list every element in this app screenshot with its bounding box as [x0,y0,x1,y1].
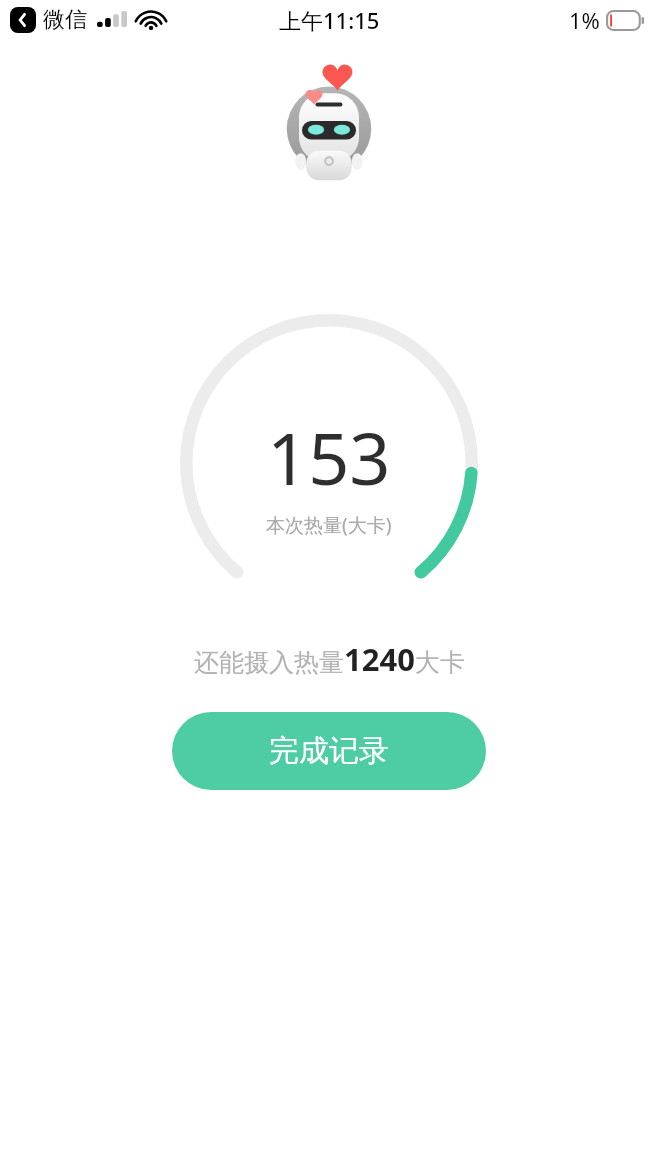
staticText: 完成记录 [269,732,389,770]
button[interactable]: 完成记录 [172,712,486,790]
button[interactable]: Back to WeChat [10,6,165,34]
staticText: 本次热量(大卡) [266,512,392,538]
staticText: 上午11:15 [279,5,380,35]
staticText: 微信 [43,6,87,34]
staticText: 153 [267,408,391,506]
staticText: 还能摄入热量1240大卡 [194,638,465,680]
staticText: 1% [569,5,600,35]
